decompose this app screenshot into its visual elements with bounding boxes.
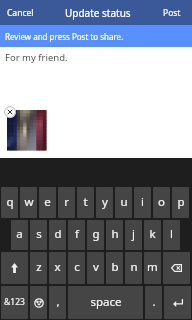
button[interactable]: j bbox=[125, 220, 142, 250]
staticText: q bbox=[6, 194, 14, 210]
staticText: Update status bbox=[65, 6, 131, 20]
button[interactable]: Cancel bbox=[0, 0, 41, 25]
staticText: n bbox=[130, 259, 138, 275]
button[interactable]: g bbox=[87, 220, 104, 250]
button[interactable]: x bbox=[49, 252, 66, 284]
button[interactable]: p bbox=[172, 187, 189, 218]
button[interactable]: Enter bbox=[164, 286, 191, 319]
button[interactable]: e bbox=[39, 187, 56, 218]
staticText: c bbox=[74, 259, 80, 275]
button[interactable]: o bbox=[153, 187, 170, 218]
staticText: For my friend. bbox=[5, 51, 68, 64]
button[interactable]: Post bbox=[156, 0, 192, 25]
staticText: k bbox=[149, 226, 156, 242]
staticText: u bbox=[120, 194, 128, 210]
staticText: d bbox=[54, 226, 62, 242]
button[interactable]: z bbox=[30, 252, 47, 284]
button[interactable]: Review and press Post to share. bbox=[0, 25, 192, 47]
button[interactable]: l bbox=[163, 220, 180, 250]
staticText: h bbox=[111, 226, 119, 242]
button[interactable]: y bbox=[96, 187, 113, 218]
button[interactable]: k bbox=[144, 220, 161, 250]
staticText: f bbox=[75, 226, 79, 242]
staticText: t bbox=[83, 194, 88, 210]
staticText: z bbox=[36, 259, 42, 275]
button[interactable]: u bbox=[115, 187, 132, 218]
button[interactable]: , bbox=[49, 286, 66, 319]
staticText: w bbox=[24, 194, 34, 210]
button[interactable]: i bbox=[134, 187, 151, 218]
button[interactable]: q bbox=[1, 187, 18, 218]
staticText: y bbox=[102, 194, 108, 210]
button[interactable]: Emoji bbox=[30, 286, 47, 319]
button[interactable]: r bbox=[58, 187, 75, 218]
staticText: x bbox=[54, 259, 61, 275]
staticText: b bbox=[111, 259, 119, 275]
staticText: r bbox=[64, 194, 69, 210]
button[interactable]: a bbox=[11, 220, 28, 250]
button[interactable]: n bbox=[125, 252, 142, 284]
button[interactable]: &123 bbox=[1, 286, 28, 319]
button[interactable]: space bbox=[68, 286, 143, 319]
button[interactable]: w bbox=[20, 187, 37, 218]
button[interactable]: Remove photo bbox=[4, 106, 16, 118]
button[interactable]: f bbox=[68, 220, 85, 250]
staticText: l bbox=[170, 226, 173, 242]
staticText: m bbox=[147, 259, 158, 275]
staticText: e bbox=[44, 194, 51, 210]
staticText: . bbox=[152, 294, 156, 310]
button[interactable]: v bbox=[87, 252, 104, 284]
staticText: a bbox=[16, 226, 23, 242]
staticText: v bbox=[93, 259, 99, 275]
staticText: Cancel bbox=[7, 7, 34, 19]
staticText: g bbox=[92, 226, 100, 242]
staticText: &123 bbox=[4, 296, 25, 308]
staticText: Review and press Post to share. bbox=[5, 31, 124, 42]
button[interactable]: s bbox=[30, 220, 47, 250]
staticText: , bbox=[56, 294, 60, 310]
staticText: j bbox=[132, 226, 135, 242]
staticText: Post bbox=[163, 7, 181, 19]
button[interactable]: Shift bbox=[1, 252, 28, 284]
button[interactable]: b bbox=[106, 252, 123, 284]
button[interactable]: Backspace bbox=[163, 252, 190, 284]
staticText: p bbox=[177, 194, 185, 210]
button[interactable]: . bbox=[145, 286, 162, 319]
staticText: o bbox=[158, 194, 165, 210]
button[interactable]: t bbox=[77, 187, 94, 218]
button[interactable]: c bbox=[68, 252, 85, 284]
staticText: i bbox=[141, 194, 144, 210]
staticText: space bbox=[90, 294, 122, 310]
staticText: s bbox=[36, 226, 42, 242]
button[interactable]: m bbox=[144, 252, 161, 284]
button[interactable]: h bbox=[106, 220, 123, 250]
button[interactable]: d bbox=[49, 220, 66, 250]
